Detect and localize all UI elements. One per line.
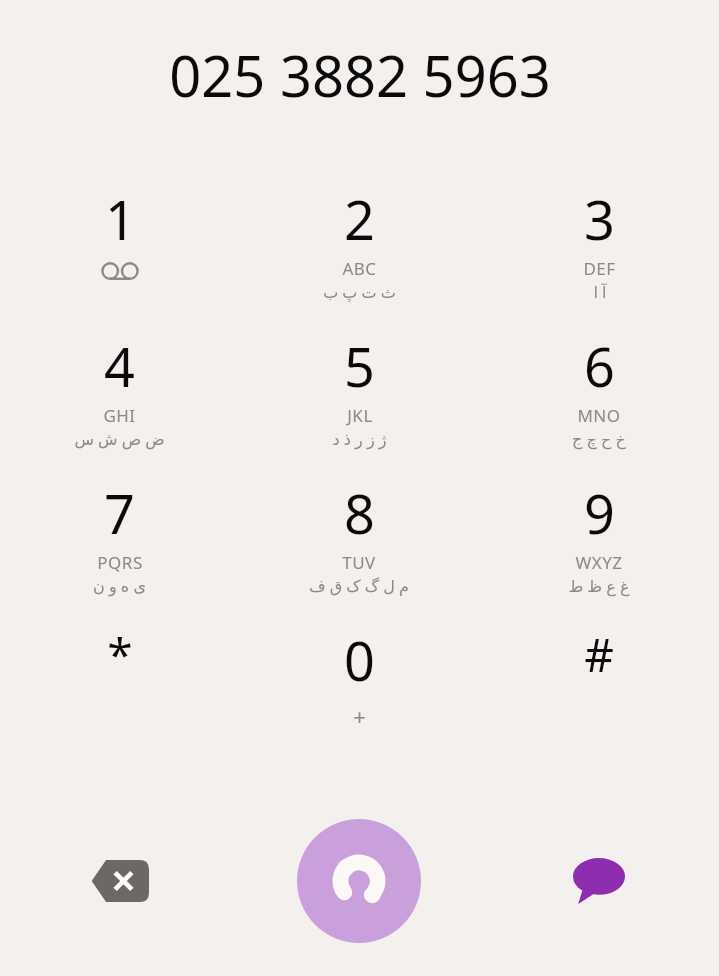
staticText: 6	[584, 329, 615, 403]
staticText: ژ ز ر ذ د	[332, 428, 387, 450]
button[interactable]: 025 3882 5963	[0, 0, 719, 150]
staticText: ث ت پ ب	[323, 281, 396, 303]
staticText: ی ه و ن	[93, 575, 146, 597]
staticText: WXYZ	[575, 551, 623, 574]
staticText: GHI	[103, 404, 136, 427]
button[interactable]: #	[479, 623, 719, 770]
button[interactable]: 9	[479, 476, 719, 623]
staticText: 7	[104, 476, 135, 550]
staticText: MNO	[577, 404, 621, 427]
staticText: *	[107, 623, 133, 686]
button[interactable]: 7	[0, 476, 239, 623]
staticText: PQRS	[97, 551, 143, 574]
staticText: 9	[584, 476, 615, 550]
button[interactable]: 5	[239, 329, 479, 476]
button[interactable]: 2	[239, 182, 479, 329]
staticText: 8	[344, 476, 375, 550]
button[interactable]: 3	[479, 182, 719, 329]
staticText: 025 3882 5963	[169, 37, 551, 113]
staticText: JKL	[347, 404, 373, 427]
button[interactable]: 4	[0, 329, 239, 476]
button[interactable]: Call	[297, 819, 421, 943]
staticText: DEF	[583, 257, 616, 280]
staticText: م ل گ ک ق ف	[309, 575, 409, 597]
staticText: 5	[344, 329, 375, 403]
button[interactable]: 8	[239, 476, 479, 623]
staticText: ض ص ش س	[74, 428, 165, 450]
staticText: ABC	[342, 257, 377, 280]
staticText: آ ا	[593, 281, 607, 303]
button[interactable]: Backspace	[0, 786, 239, 976]
staticText: 0	[344, 623, 375, 697]
staticText: 2	[344, 182, 375, 256]
staticText: TUV	[342, 551, 376, 574]
staticText: 4	[104, 329, 135, 403]
staticText: 3	[584, 182, 615, 256]
staticText: خ ح چ ج	[572, 428, 626, 450]
button[interactable]: Send message	[479, 786, 719, 976]
button[interactable]: *	[0, 623, 239, 770]
staticText: +	[353, 701, 366, 731]
staticText: غ ع ظ ط	[568, 575, 630, 597]
button[interactable]: 0	[239, 623, 479, 770]
staticText: 1	[105, 182, 136, 256]
staticText: #	[584, 623, 614, 686]
button[interactable]: 1	[0, 182, 239, 329]
button[interactable]: 6	[479, 329, 719, 476]
